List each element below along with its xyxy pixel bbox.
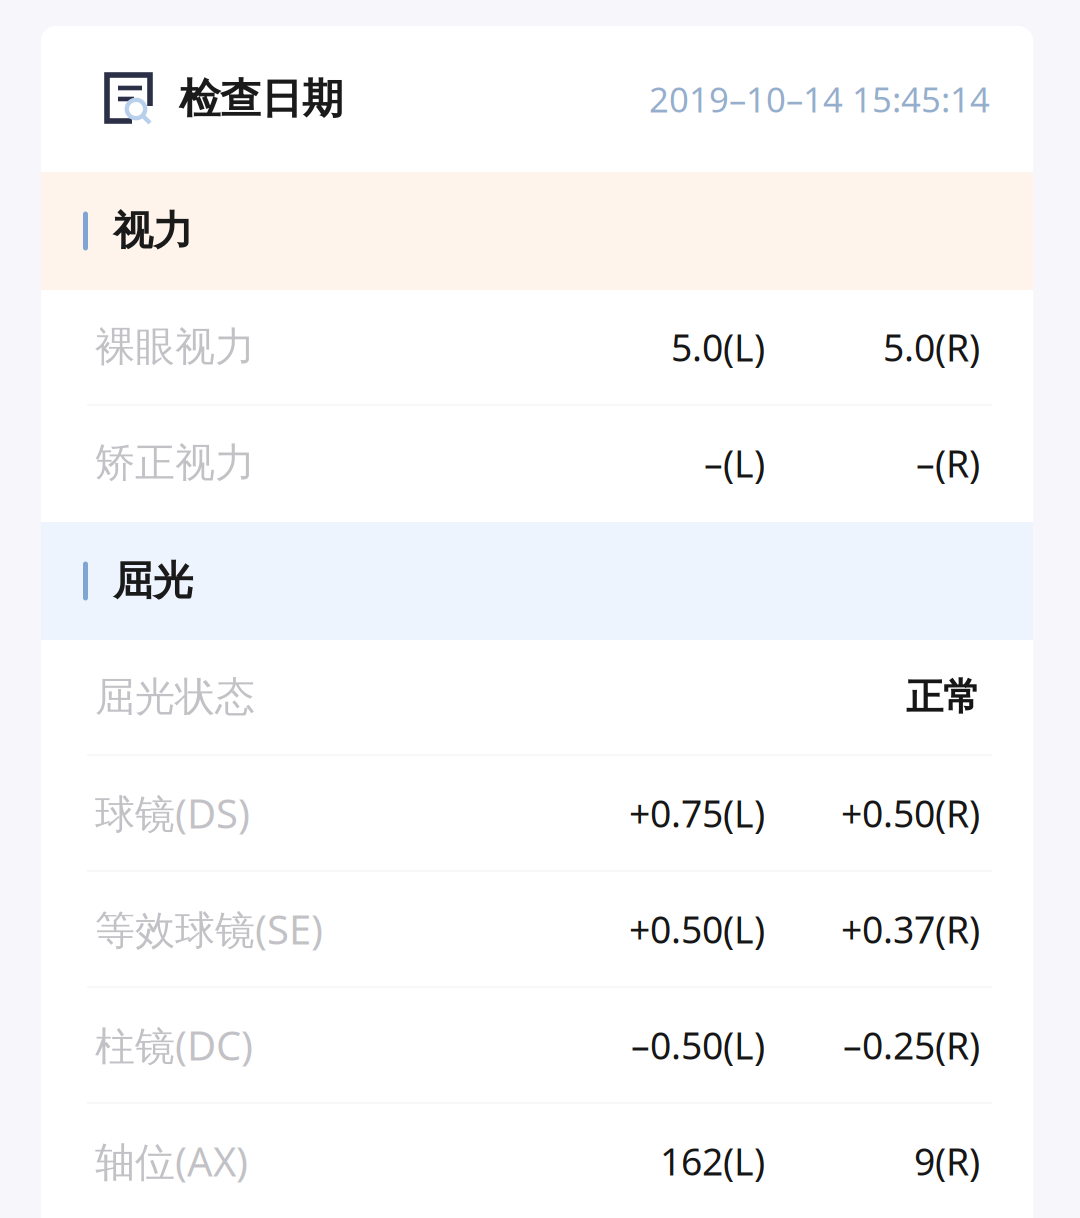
staticText: 2019–10–14 15:45:14	[649, 76, 990, 122]
staticText: +0.50(R)	[841, 788, 980, 838]
button[interactable]: 矫正视力	[41, 406, 1033, 522]
button[interactable]: 屈光状态	[41, 640, 1033, 756]
staticText: –(L)	[704, 438, 765, 488]
staticText: 正常	[906, 674, 980, 720]
staticText: 视力	[113, 206, 193, 255]
staticText: –(R)	[916, 438, 980, 488]
button[interactable]: 等效球镜(SE)	[41, 872, 1033, 988]
button[interactable]: 裸眼视力	[41, 290, 1033, 406]
staticText: 162(L)	[660, 1136, 765, 1186]
staticText: 柱镜(DC)	[95, 1018, 253, 1071]
staticText: –0.50(L)	[631, 1020, 765, 1070]
staticText: 轴位(AX)	[95, 1134, 248, 1187]
staticText: 5.0(R)	[883, 322, 980, 372]
staticText: 球镜(DS)	[95, 786, 250, 839]
button[interactable]: 柱镜(DC)	[41, 988, 1033, 1104]
staticText: 裸眼视力	[95, 322, 255, 371]
staticText: 矫正视力	[95, 438, 255, 487]
staticText: 5.0(L)	[671, 322, 765, 372]
button[interactable]: 球镜(DS)	[41, 756, 1033, 872]
staticText: 检查日期	[179, 74, 343, 124]
button[interactable]: 检查日期	[41, 26, 1033, 172]
button[interactable]: 轴位(AX)	[41, 1104, 1033, 1218]
staticText: 9(R)	[914, 1136, 980, 1186]
staticText: –0.25(R)	[843, 1020, 980, 1070]
staticText: +0.50(L)	[629, 904, 765, 954]
staticText: 屈光状态	[95, 672, 255, 721]
staticText: 等效球镜(SE)	[95, 902, 323, 955]
staticText: +0.75(L)	[629, 788, 765, 838]
staticText: 屈光	[113, 556, 193, 605]
staticText: +0.37(R)	[841, 904, 980, 954]
